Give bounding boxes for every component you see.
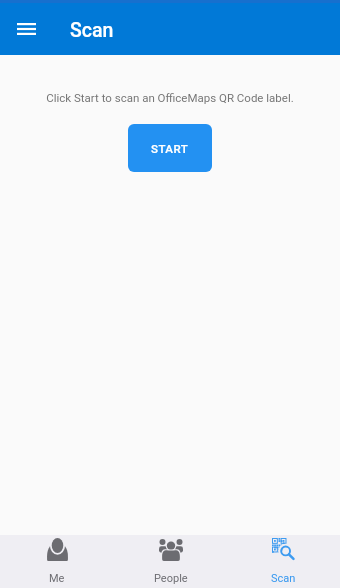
staticText: Scan bbox=[70, 19, 114, 42]
button[interactable]: People bbox=[114, 535, 227, 588]
button[interactable]: Open navigation menu bbox=[6, 9, 46, 49]
staticText: Scan bbox=[271, 572, 296, 585]
staticText: START bbox=[151, 142, 189, 155]
button[interactable]: START bbox=[128, 124, 212, 172]
button[interactable]: Me bbox=[0, 535, 114, 588]
staticText: People bbox=[154, 572, 188, 585]
staticText: Click Start to scan an OfficeMaps QR Cod… bbox=[46, 91, 294, 104]
staticText: Me bbox=[49, 572, 65, 585]
button[interactable]: Scan bbox=[227, 535, 340, 588]
